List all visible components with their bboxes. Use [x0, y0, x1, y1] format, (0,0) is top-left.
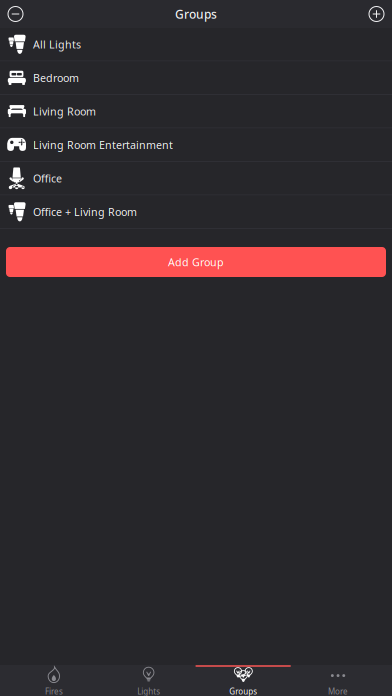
staticText: Lights	[137, 686, 160, 696]
staticText: Add Group	[168, 255, 224, 269]
button[interactable]: More	[291, 665, 385, 696]
button[interactable]: Living Room Entertainment	[0, 128, 392, 162]
staticText: Living Room	[33, 104, 96, 118]
button[interactable]: Office	[0, 162, 392, 195]
staticText: All Lights	[33, 37, 81, 51]
staticText: Groups	[175, 6, 217, 22]
staticText: Groups	[229, 686, 257, 696]
staticText: Bedroom	[33, 71, 79, 85]
staticText: More	[328, 686, 348, 696]
button[interactable]: Lights	[101, 665, 196, 696]
button[interactable]: Add Group	[6, 247, 386, 277]
staticText: Fires	[45, 686, 63, 696]
staticText: Office + Living Room	[33, 205, 137, 219]
button[interactable]: Living Room	[0, 95, 392, 128]
button[interactable]: Remove group	[7, 5, 24, 22]
button[interactable]: Bedroom	[0, 61, 392, 95]
button[interactable]: Fires	[7, 665, 101, 696]
button[interactable]: Groups	[196, 665, 291, 696]
staticText: Office	[33, 171, 62, 185]
button[interactable]: Add group	[368, 5, 385, 22]
button[interactable]: All Lights	[0, 28, 392, 61]
staticText: Living Room Entertainment	[33, 138, 173, 152]
button[interactable]: Office + Living Room	[0, 195, 392, 229]
